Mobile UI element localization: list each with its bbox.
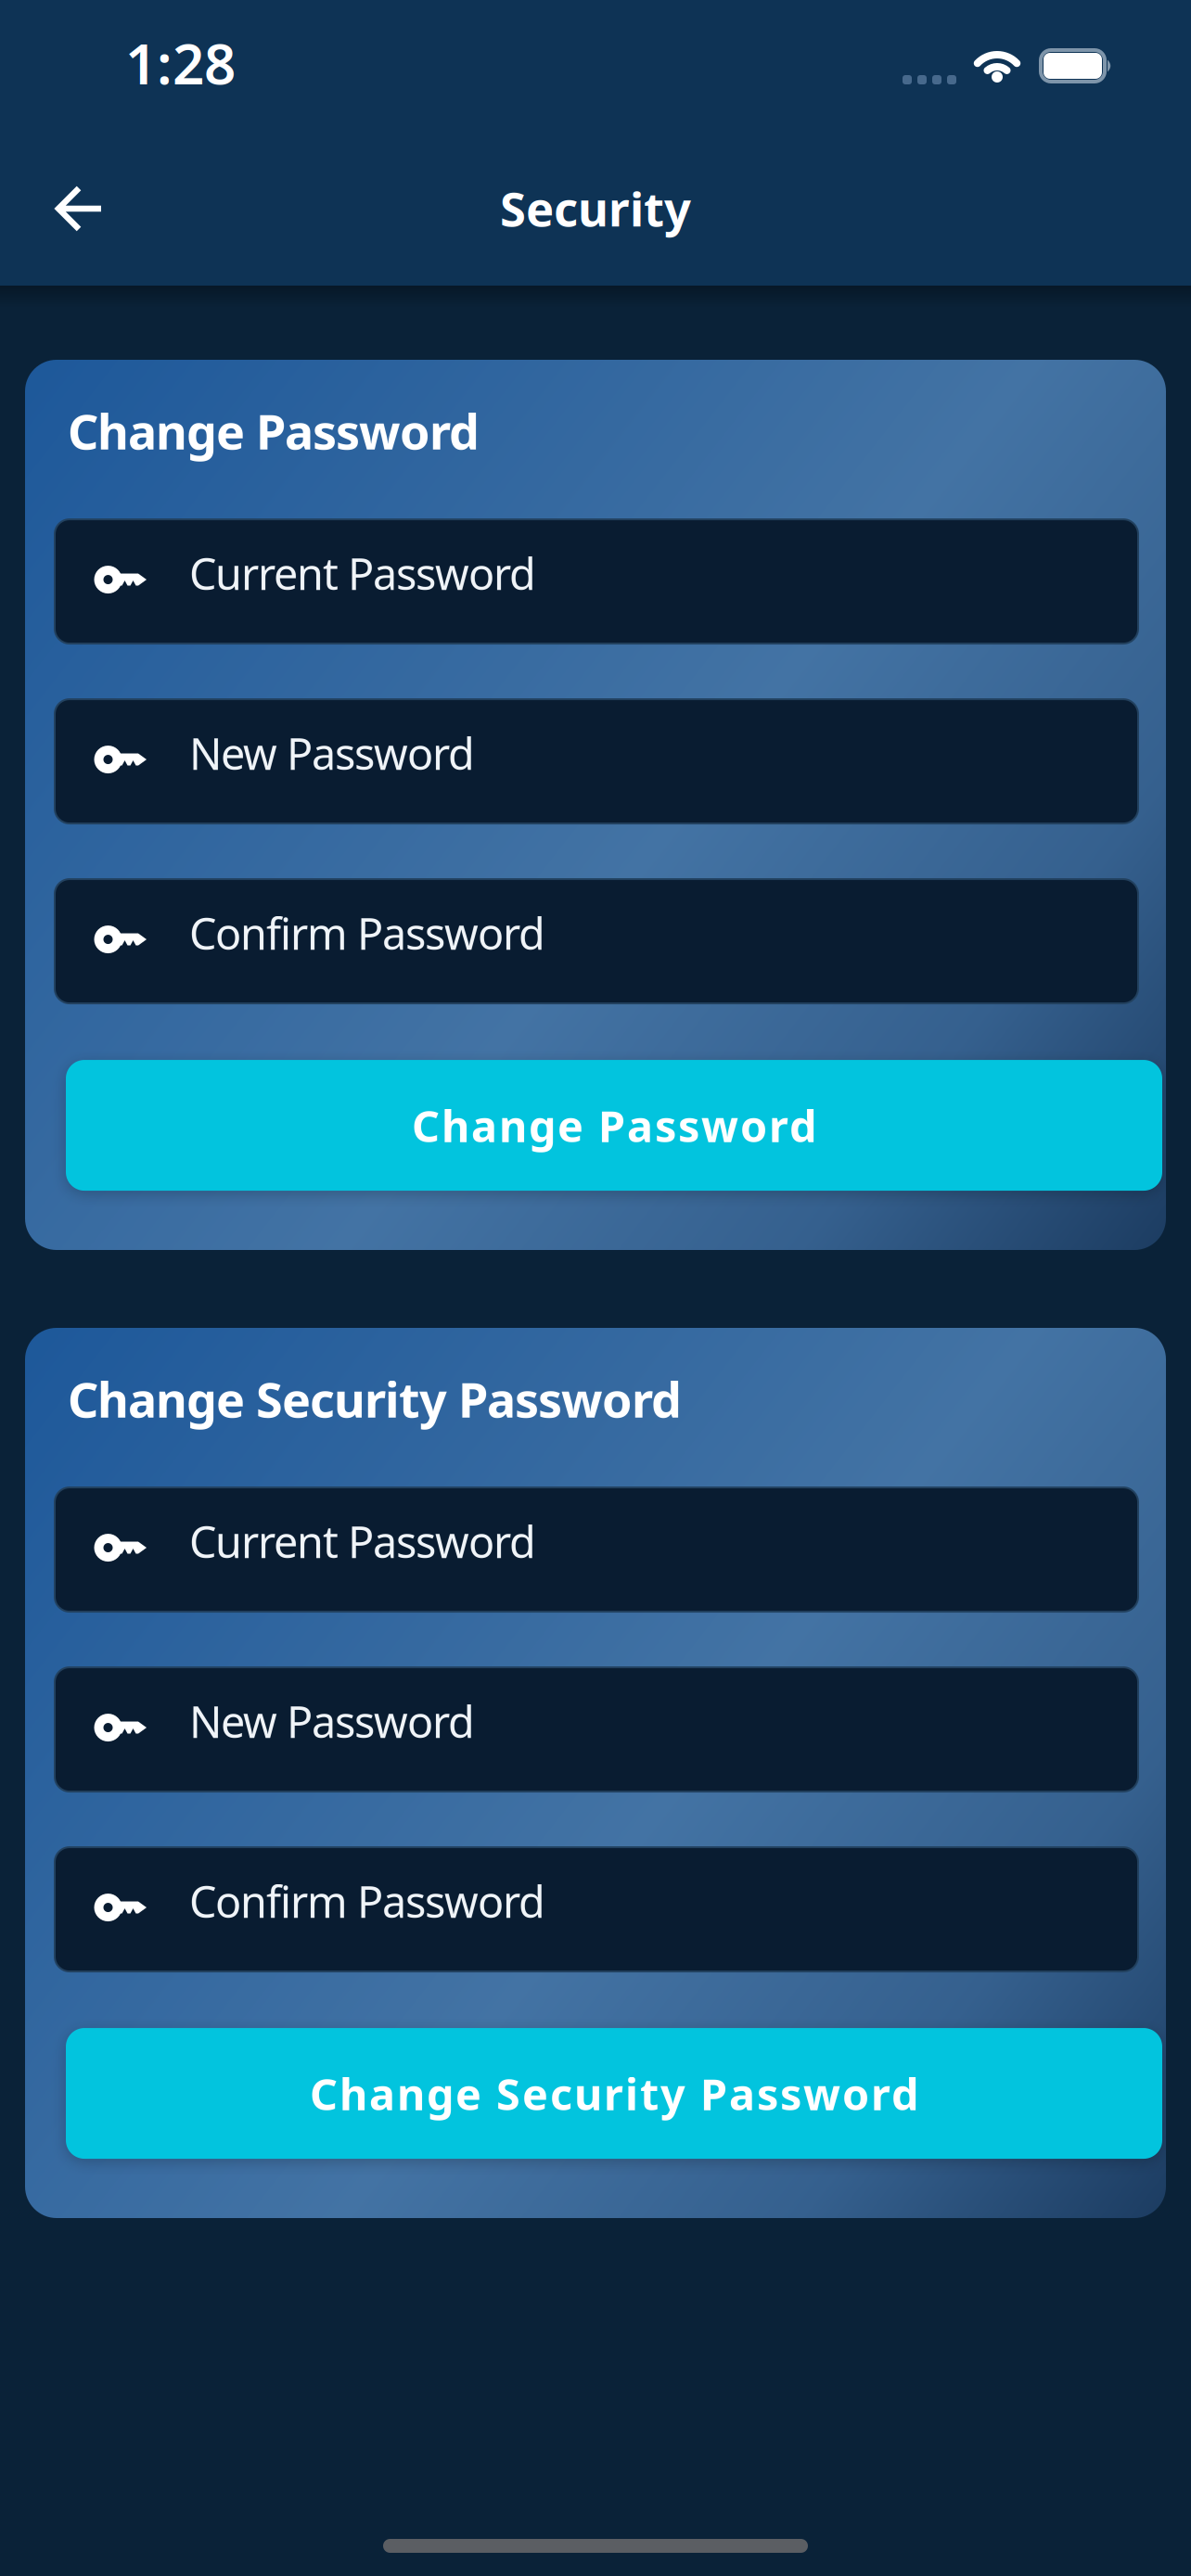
staticText: New Password (189, 724, 475, 782)
staticText: Change Security Password (310, 2065, 918, 2122)
staticText: Change Security Password (68, 1367, 682, 1431)
staticText: Security (500, 177, 691, 240)
staticText: Change Password (68, 399, 480, 463)
staticText: Change Password (412, 1097, 816, 1154)
button[interactable]: Current Password (55, 1487, 1138, 1612)
staticText: Confirm Password (189, 1872, 545, 1930)
button[interactable]: Change Password (66, 1060, 1162, 1191)
button[interactable]: Confirm Password (55, 879, 1138, 1003)
staticText: 1:28 (125, 26, 236, 100)
button[interactable]: Current Password (55, 519, 1138, 644)
staticText: Current Password (189, 1512, 536, 1570)
button[interactable]: Back (56, 186, 102, 231)
button[interactable]: Confirm Password (55, 1847, 1138, 1972)
button[interactable]: Change Security Password (66, 2028, 1162, 2159)
staticText: Confirm Password (189, 904, 545, 962)
staticText: Current Password (189, 544, 536, 602)
staticText: New Password (189, 1692, 475, 1750)
button[interactable]: New Password (55, 699, 1138, 824)
button[interactable]: New Password (55, 1667, 1138, 1792)
